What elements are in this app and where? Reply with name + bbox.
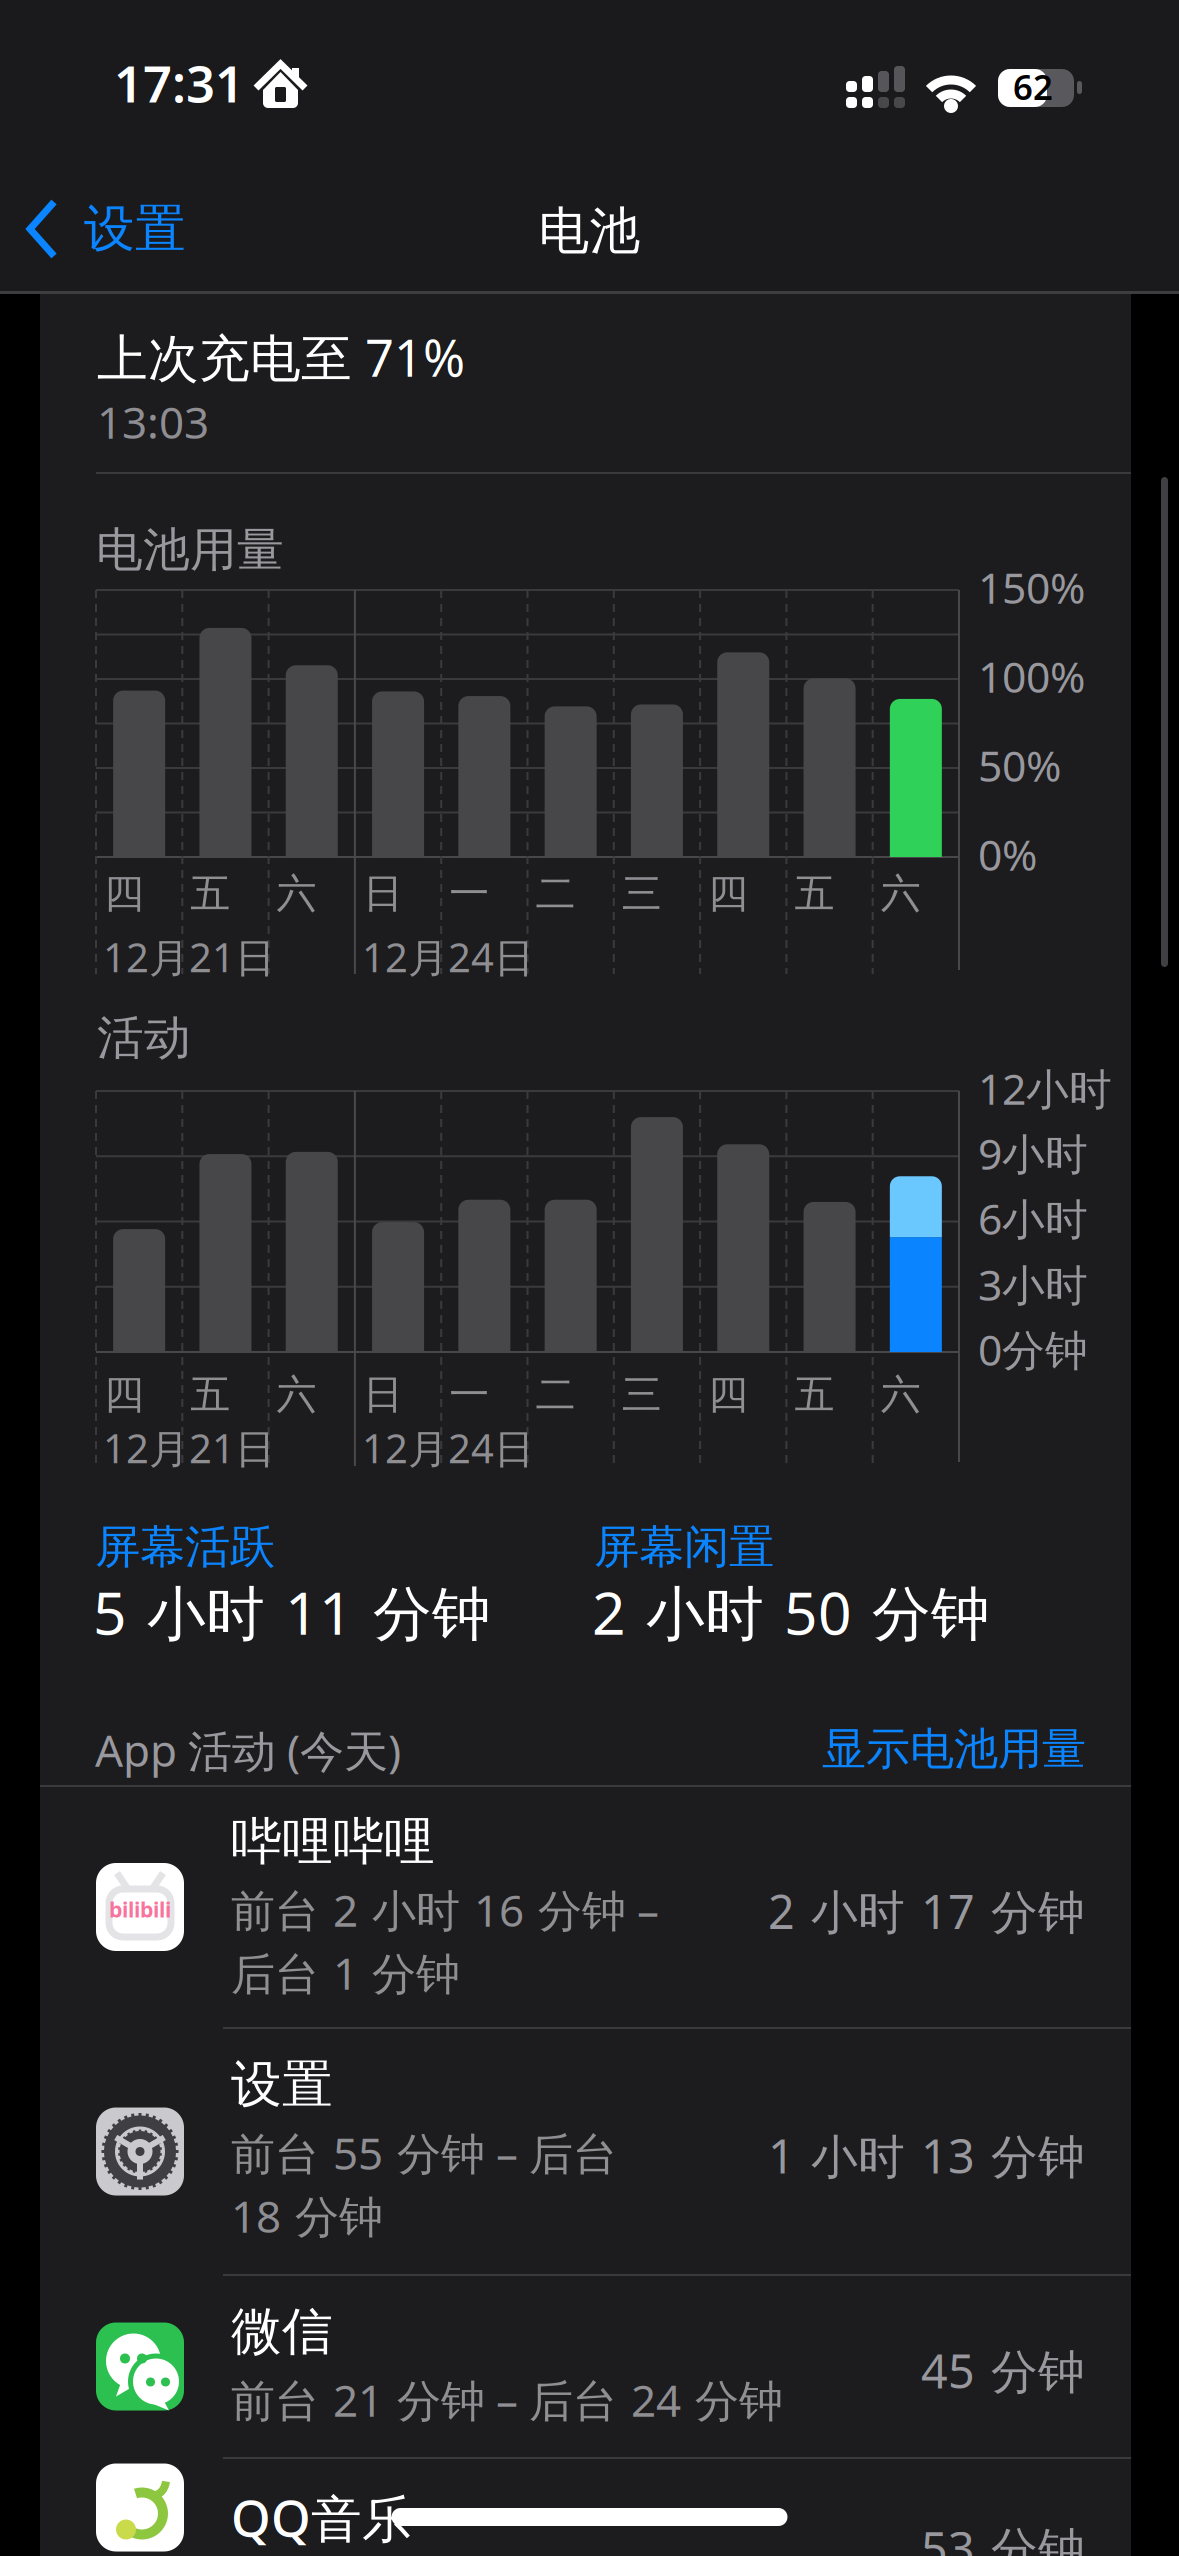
- staticText: 0%: [978, 826, 1037, 883]
- staticText: 12月21日: [103, 930, 275, 983]
- staticText: 日: [363, 1370, 403, 1419]
- staticText: 四: [708, 869, 748, 918]
- staticText: 一: [449, 869, 489, 918]
- staticText: 2 小时 17 分钟: [768, 1880, 1085, 1942]
- staticText: 二: [535, 1370, 575, 1419]
- staticText: 四: [104, 869, 144, 918]
- staticText: 六: [881, 869, 921, 918]
- staticText: 150%: [978, 559, 1085, 616]
- staticText: 四: [708, 1370, 748, 1419]
- staticText: 53 分钟: [921, 2517, 1085, 2556]
- staticText: 前台 21 分钟 – 后台 24 分钟: [231, 2370, 783, 2429]
- staticText: 5 小时 11 分钟: [93, 1573, 491, 1651]
- staticText: 三: [622, 1370, 662, 1419]
- staticText: 50%: [978, 737, 1061, 794]
- staticText: 哔哩哔哩: [231, 1810, 435, 1873]
- staticText: 12月24日: [362, 930, 534, 983]
- staticText: 六: [881, 1370, 921, 1419]
- staticText: 四: [104, 1370, 144, 1419]
- staticText: 上次充电至 71%: [97, 323, 465, 391]
- staticText: 12月24日: [362, 1421, 534, 1474]
- staticText: 前台 55 分钟 – 后台: [231, 2123, 617, 2182]
- staticText: 六: [277, 869, 317, 918]
- staticText: 100%: [978, 648, 1085, 705]
- staticText: 18 分钟: [231, 2186, 383, 2245]
- staticText: App 活动 (今天): [95, 1720, 401, 1779]
- staticText: 45 分钟: [921, 2339, 1085, 2401]
- staticText: 12月21日: [103, 1421, 275, 1474]
- staticText: 电池用量: [96, 521, 284, 578]
- staticText: QQ音乐: [231, 2483, 413, 2551]
- staticText: 五: [190, 1370, 230, 1419]
- button[interactable]: 显示电池用量: [686, 1722, 1086, 1776]
- staticText: 五: [190, 869, 230, 918]
- staticText: 二: [535, 869, 575, 918]
- staticText: 五: [794, 1370, 834, 1419]
- staticText: 前台 2 小时 16 分钟 –: [231, 1880, 659, 1939]
- button[interactable]: 设置: [40, 2029, 1131, 2274]
- staticText: 显示电池用量: [822, 1722, 1086, 1776]
- button[interactable]: QQ音乐: [40, 2459, 1131, 2556]
- staticText: 活动: [97, 1009, 191, 1066]
- staticText: 五: [794, 869, 834, 918]
- staticText: 62: [1013, 63, 1053, 109]
- staticText: bilibili: [109, 1895, 171, 1923]
- staticText: 日: [363, 869, 403, 918]
- staticText: 三: [622, 869, 662, 918]
- staticText: 电池: [538, 200, 640, 262]
- staticText: 微信: [231, 2300, 333, 2363]
- staticText: 后台 1 分钟: [231, 1943, 460, 2002]
- staticText: 屏幕活跃: [95, 1519, 275, 1575]
- staticText: 0分钟: [978, 1321, 1088, 1378]
- button[interactable]: 返回设置: [26, 198, 186, 260]
- staticText: 一: [449, 1370, 489, 1419]
- staticText: 6小时: [978, 1190, 1088, 1247]
- staticText: 设置: [231, 2053, 333, 2116]
- staticText: 1 小时 13 分钟: [768, 2124, 1085, 2186]
- staticText: 2 小时 50 分钟: [592, 1573, 990, 1651]
- staticText: 设置: [84, 198, 186, 260]
- staticText: 13:03: [97, 392, 209, 451]
- staticText: 17:31: [114, 49, 244, 116]
- button[interactable]: bilibili: [40, 1786, 1131, 2028]
- button[interactable]: 微信: [40, 2276, 1131, 2457]
- staticText: 9小时: [978, 1125, 1088, 1182]
- staticText: 12小时: [978, 1060, 1112, 1117]
- staticText: 六: [277, 1370, 317, 1419]
- staticText: 3小时: [978, 1256, 1088, 1313]
- staticText: 屏幕闲置: [594, 1519, 774, 1575]
